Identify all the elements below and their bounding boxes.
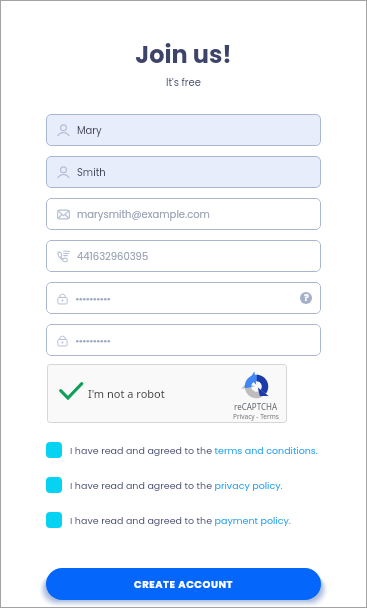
staticText: 441632960395 bbox=[77, 249, 149, 263]
button[interactable]: CREATE ACCOUNT bbox=[46, 568, 321, 600]
staticText: Smith bbox=[77, 165, 106, 179]
staticText: CREATE ACCOUNT bbox=[134, 577, 234, 591]
staticText: Mary bbox=[77, 123, 102, 137]
button[interactable]: Password help bbox=[300, 292, 312, 304]
staticText: marysmith@example.com bbox=[77, 207, 210, 221]
button[interactable] bbox=[46, 324, 321, 356]
button[interactable]: Password help bbox=[46, 282, 321, 314]
button[interactable]: Smith bbox=[46, 156, 321, 188]
staticText: reCAPTCHA bbox=[234, 401, 278, 412]
staticText: I have read and agreed to the terms and … bbox=[70, 444, 318, 457]
staticText: It's free bbox=[0, 75, 367, 89]
staticText: ? bbox=[304, 292, 309, 304]
button[interactable]: I have read and agreed to the payment po… bbox=[46, 512, 291, 528]
button[interactable]: I have read and agreed to the privacy po… bbox=[46, 477, 283, 493]
button[interactable]: marysmith@example.com bbox=[46, 198, 321, 230]
staticText: Privacy - Terms bbox=[233, 412, 279, 421]
button[interactable]: Mary bbox=[46, 114, 321, 146]
staticText: Join us! bbox=[0, 38, 367, 72]
staticText: I have read and agreed to the payment po… bbox=[70, 514, 291, 527]
staticText: I have read and agreed to the privacy po… bbox=[70, 479, 283, 492]
button[interactable]: I'm not a robot reCAPTCHA bbox=[47, 364, 287, 423]
staticText: I'm not a robot bbox=[88, 386, 165, 401]
button[interactable]: 441632960395 bbox=[46, 240, 321, 272]
button[interactable]: I have read and agreed to the terms and … bbox=[46, 442, 318, 458]
